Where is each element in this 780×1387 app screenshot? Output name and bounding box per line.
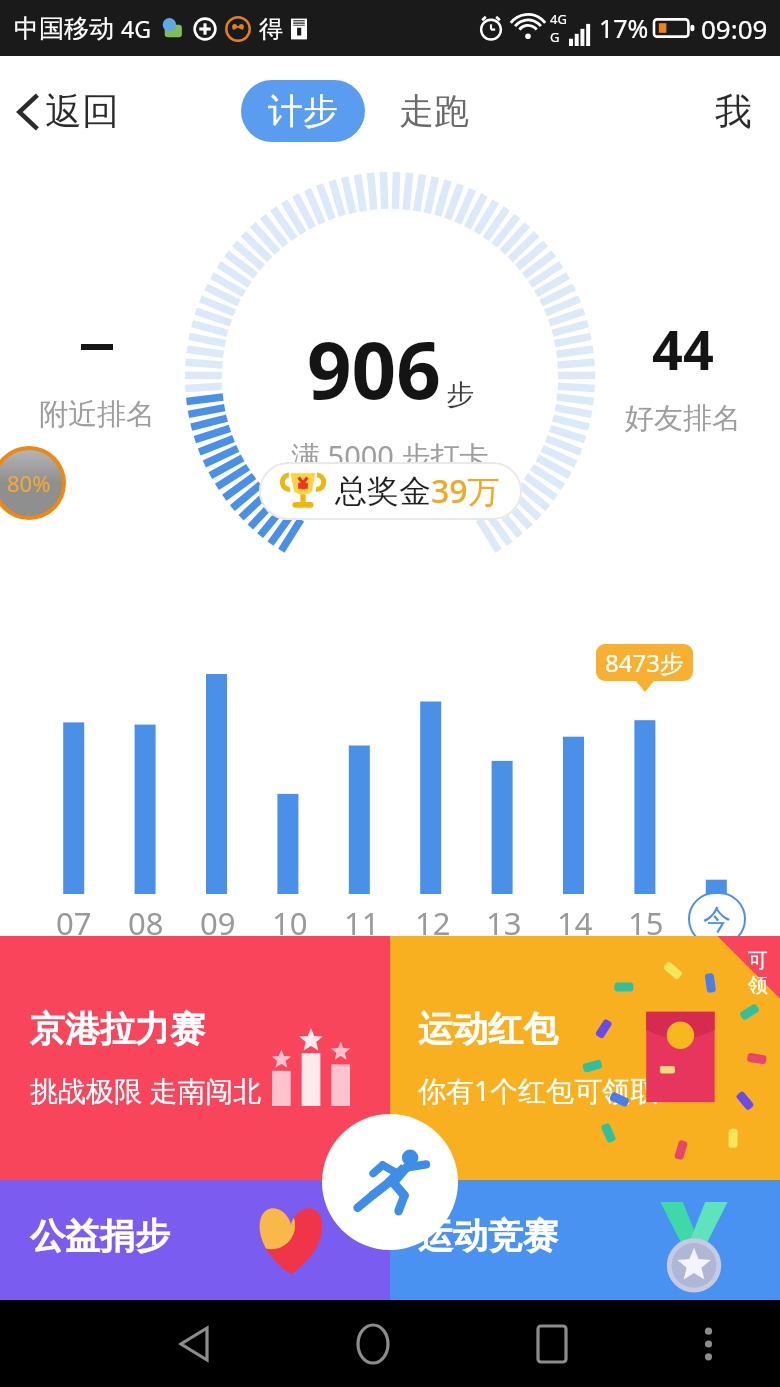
- staticText: 计步: [268, 89, 338, 133]
- staticText: 得: [259, 14, 283, 44]
- staticText: 京港拉力赛: [30, 1007, 205, 1051]
- staticText: 07: [56, 902, 92, 944]
- staticText: 10: [272, 902, 308, 944]
- staticText: 14: [557, 902, 593, 944]
- button[interactable]: 12: [415, 902, 451, 944]
- staticText: 906: [307, 316, 441, 422]
- button[interactable]: Home: [338, 1309, 408, 1379]
- staticText: 我: [715, 88, 752, 135]
- button[interactable]: Back: [159, 1309, 229, 1379]
- button[interactable]: 我: [709, 82, 758, 141]
- staticText: 09:09: [701, 11, 768, 46]
- staticText: 走跑: [399, 89, 469, 133]
- button[interactable]: 附近排名: [22, 318, 172, 433]
- button[interactable]: 15: [628, 902, 664, 944]
- button[interactable]: 09: [200, 902, 236, 944]
- staticText: 你有1个红包可领取: [418, 1071, 659, 1109]
- staticText: 4G: [550, 10, 567, 28]
- button[interactable]: 公益捐步: [0, 1180, 390, 1300]
- button[interactable]: 07: [56, 902, 92, 944]
- staticText: 附近排名: [39, 396, 155, 433]
- button[interactable]: 走跑: [393, 80, 475, 142]
- button[interactable]: 今: [688, 892, 746, 946]
- staticText: 4G: [121, 13, 151, 44]
- button[interactable]: Recents: [517, 1309, 587, 1379]
- staticText: 09: [200, 902, 236, 944]
- staticText: 13: [486, 902, 522, 944]
- button[interactable]: 运动竞赛: [390, 1180, 780, 1300]
- button[interactable]: 京港拉力赛: [0, 936, 390, 1180]
- staticText: 返回: [45, 88, 119, 135]
- staticText: 11: [344, 902, 380, 944]
- staticText: 39万: [431, 469, 500, 513]
- button[interactable]: 44: [608, 312, 758, 437]
- staticText: 满 5000 步打卡: [291, 436, 489, 476]
- staticText: 步: [446, 377, 474, 412]
- button[interactable]: 10: [272, 902, 308, 944]
- staticText: 15: [628, 902, 664, 944]
- staticText: G: [550, 28, 560, 46]
- staticText: 总奖金: [335, 471, 431, 511]
- staticText: 运动红包: [418, 1007, 558, 1051]
- staticText: 运动竞赛: [418, 1214, 558, 1258]
- staticText: 中国移动: [14, 13, 114, 44]
- staticText: 17%: [599, 11, 649, 45]
- button[interactable]: 总奖金: [259, 462, 522, 520]
- button[interactable]: 开始跑步: [322, 1114, 458, 1250]
- staticText: 挑战极限 走南闯北: [30, 1071, 262, 1109]
- button[interactable]: 计步: [241, 80, 365, 142]
- staticText: 可: [748, 948, 768, 973]
- staticText: 领: [748, 973, 768, 998]
- staticText: 8473步: [605, 646, 684, 679]
- button[interactable]: 08: [128, 902, 164, 944]
- button[interactable]: 11: [344, 902, 380, 944]
- button[interactable]: 运动红包: [390, 936, 780, 1180]
- staticText: 44: [652, 312, 714, 386]
- button[interactable]: 14: [557, 902, 593, 944]
- staticText: 公益捐步: [30, 1214, 170, 1258]
- button[interactable]: More options: [680, 1316, 736, 1372]
- button[interactable]: 返回: [12, 80, 125, 143]
- staticText: 好友排名: [625, 400, 741, 437]
- staticText: 今: [703, 902, 731, 937]
- staticText: 12: [415, 902, 451, 944]
- button[interactable]: 13: [486, 902, 522, 944]
- staticText: 80%: [7, 468, 51, 498]
- staticText: 08: [128, 902, 164, 944]
